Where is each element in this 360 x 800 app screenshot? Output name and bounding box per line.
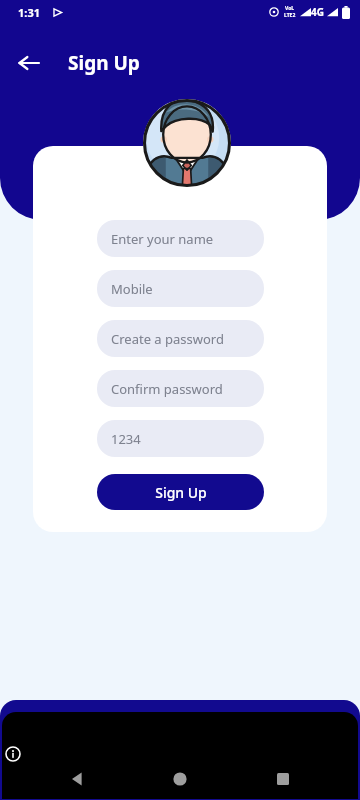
staticText: Sign Up xyxy=(155,483,207,502)
button[interactable]: Mobile xyxy=(97,270,264,307)
button[interactable]: Recent apps xyxy=(268,764,298,794)
button[interactable]: Home xyxy=(165,764,195,794)
staticText: Mobile xyxy=(111,280,153,298)
staticText: 1234 xyxy=(111,430,141,448)
staticText: Create a password xyxy=(111,330,224,348)
staticText: Sign Up xyxy=(68,50,140,76)
button[interactable]: 1234 xyxy=(97,420,264,457)
staticText: Confirm password xyxy=(111,380,223,398)
staticText: 1:31 xyxy=(18,5,40,20)
staticText: 4G xyxy=(311,5,324,19)
button[interactable]: Sign Up xyxy=(97,474,264,510)
button[interactable]: Enter your name xyxy=(97,220,264,257)
button[interactable]: Confirm password xyxy=(97,370,264,407)
button[interactable]: Back xyxy=(63,764,93,794)
staticText: VoL xyxy=(285,5,295,12)
button[interactable]: Info xyxy=(5,746,21,762)
staticText: Enter your name xyxy=(111,230,214,248)
button[interactable]: Back xyxy=(10,44,48,82)
staticText: LTE2 xyxy=(284,12,296,19)
button[interactable]: Create a password xyxy=(97,320,264,357)
